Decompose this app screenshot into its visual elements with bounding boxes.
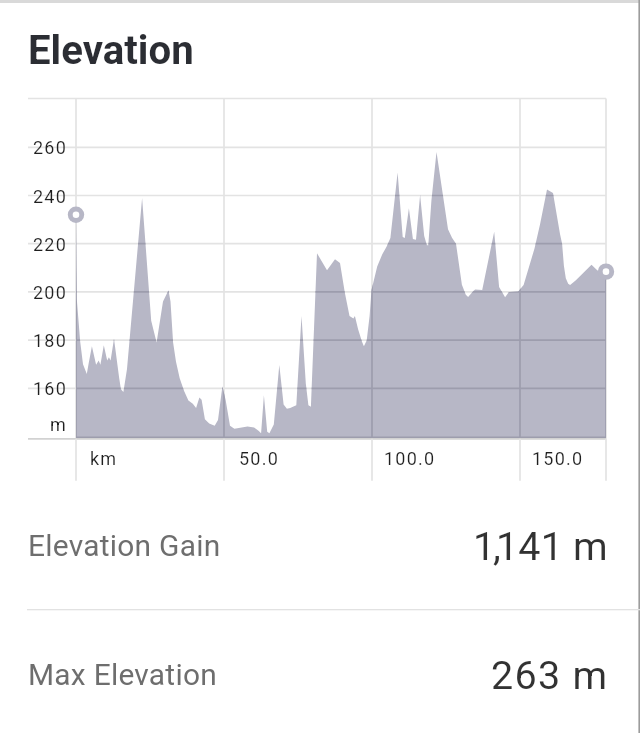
staticText: km [90,448,118,469]
staticText: 263 m [491,652,609,698]
staticText: m [50,414,68,435]
staticText: 220 [33,234,68,255]
button[interactable]: Elevation Gain [0,504,640,587]
staticText: 50.0 [239,448,280,469]
staticText: 141 m [496,523,608,569]
staticText: 100.0 [384,448,436,469]
staticText: 150.0 [532,448,584,469]
button[interactable]: Max Elevation [0,633,640,716]
staticText: Elevation Gain [28,528,221,563]
staticText: 260 [33,137,68,158]
staticText: 240 [33,186,68,207]
staticText: 200 [33,282,68,303]
staticText: 160 [33,378,68,399]
staticText: 1 [473,523,496,569]
staticText: Elevation [28,27,194,74]
staticText: 180 [33,330,68,351]
staticText: Max Elevation [28,657,218,692]
